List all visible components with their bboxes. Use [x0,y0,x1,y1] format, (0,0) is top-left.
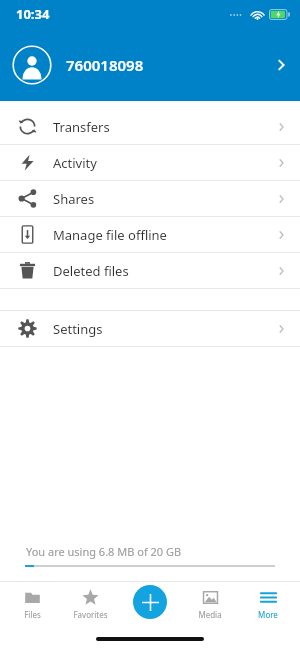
staticText: More [258,609,278,620]
button[interactable]: Shares [0,181,300,216]
button[interactable]: Files [6,582,58,620]
button[interactable]: Settings [0,311,300,346]
staticText: Manage file offline [53,226,167,244]
staticText: 10:34 [16,5,50,23]
button[interactable]: More [242,582,294,620]
button[interactable]: Activity [0,145,300,180]
staticText: Deleted files [53,262,129,280]
staticText: Media [198,609,222,620]
staticText: Activity [53,154,97,172]
staticText: You are using 6.8 MB of 20 GB [26,544,182,559]
button[interactable]: Transfers [0,109,300,144]
button[interactable]: 760018098 [0,28,300,101]
staticText: Transfers [53,118,110,136]
button[interactable]: Add [133,585,167,619]
button[interactable]: Favorites [64,582,116,620]
staticText: 760018098 [66,55,144,75]
button[interactable]: Media [184,582,236,620]
staticText: Shares [53,190,95,208]
staticText: Favorites [73,609,108,620]
staticText: Files [24,609,41,620]
button[interactable]: Deleted files [0,253,300,288]
button[interactable]: Manage file offline [0,217,300,252]
staticText: Settings [53,320,103,338]
